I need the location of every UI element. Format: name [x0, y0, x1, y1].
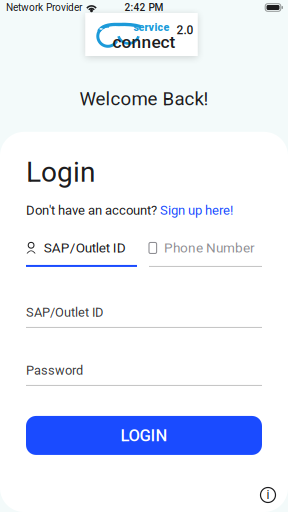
button[interactable]: Information — [256, 483, 280, 507]
button[interactable]: Phone Number — [149, 240, 262, 267]
staticText: 2.0 — [176, 23, 193, 37]
staticText: LOGIN — [120, 426, 167, 445]
button[interactable]: Sign up here! — [160, 203, 233, 218]
staticText: Network Provider — [6, 2, 82, 13]
staticText: i — [266, 488, 269, 502]
staticText: SAP/Outlet ID — [44, 240, 126, 256]
staticText: Login — [26, 156, 95, 189]
staticText: Welcome Back! — [79, 88, 208, 110]
staticText: SAP/Outlet ID — [26, 305, 103, 320]
button[interactable]: SAP/Outlet ID — [26, 240, 137, 267]
staticText: Sign up here! — [160, 203, 233, 218]
staticText: Phone Number — [164, 240, 255, 256]
staticText: Password — [26, 363, 83, 378]
staticText: Don't have an account? — [26, 203, 160, 218]
staticText: 2:42 PM — [124, 2, 163, 13]
staticText: connect — [112, 32, 175, 52]
button[interactable]: LOGIN — [26, 416, 262, 455]
staticText: service — [133, 21, 169, 33]
